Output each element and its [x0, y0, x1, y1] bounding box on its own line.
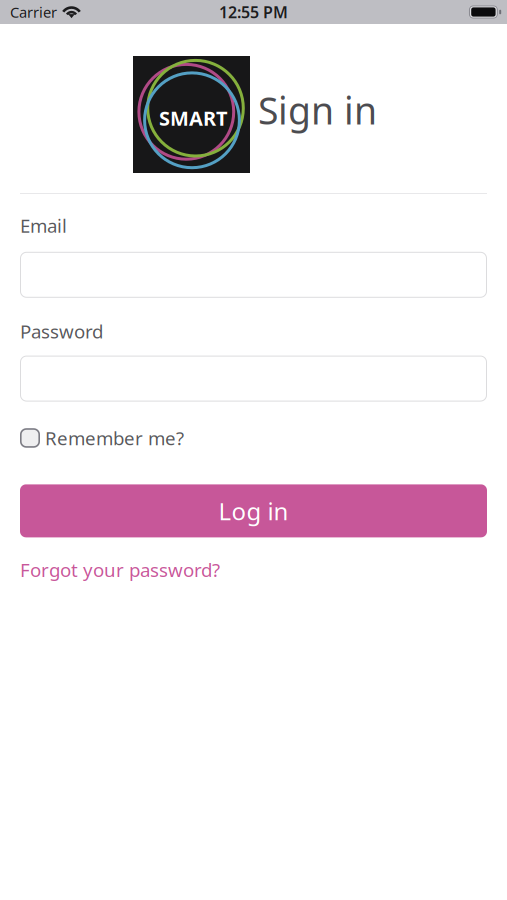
button[interactable]: Forgot your password?	[20, 557, 220, 582]
staticText: Forgot your password?	[20, 557, 220, 582]
staticText: Log in	[218, 495, 288, 527]
staticText: 12:55 PM	[219, 1, 288, 23]
staticText: SMART	[159, 105, 228, 131]
staticText: Carrier	[10, 2, 57, 22]
button[interactable]: Remember me?	[20, 426, 184, 450]
staticText: Sign in	[258, 85, 377, 135]
staticText: Email	[20, 213, 67, 238]
staticText: Remember me?	[45, 426, 184, 450]
button[interactable]: Log in	[20, 484, 487, 537]
staticText: Password	[20, 319, 103, 344]
